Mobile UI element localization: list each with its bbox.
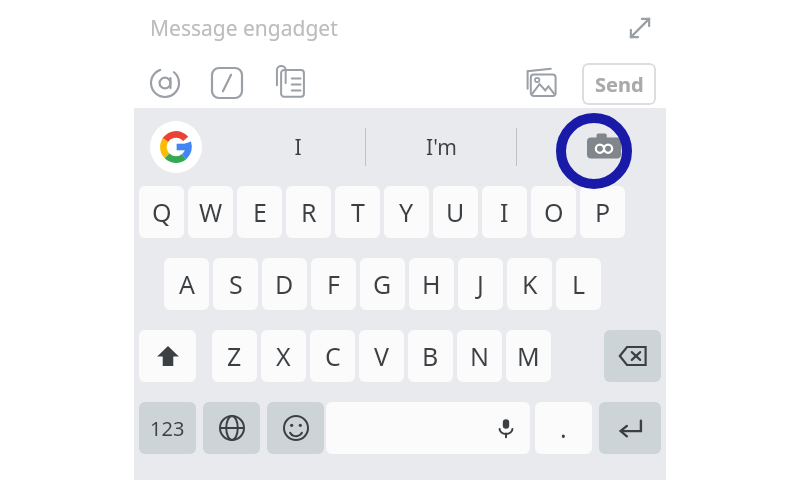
- staticText: K: [522, 267, 538, 301]
- staticText: U: [446, 195, 465, 229]
- staticText: W: [199, 195, 223, 229]
- button[interactable]: Space: [326, 402, 530, 454]
- button[interactable]: Backspace: [604, 330, 661, 382]
- button[interactable]: O: [531, 186, 576, 238]
- button[interactable]: D: [262, 258, 307, 310]
- button[interactable]: V: [359, 330, 404, 382]
- button[interactable]: Y: [384, 186, 429, 238]
- staticText: D: [275, 267, 294, 301]
- button[interactable]: Add image: [522, 64, 562, 104]
- staticText: Send: [595, 71, 644, 98]
- button[interactable]: A: [164, 258, 209, 310]
- staticText: J: [477, 267, 484, 301]
- staticText: P: [595, 195, 611, 229]
- button[interactable]: Attach file: [272, 64, 310, 102]
- button[interactable]: M: [506, 330, 551, 382]
- button[interactable]: Emoji: [267, 402, 324, 454]
- button[interactable]: Slash command: [210, 66, 244, 100]
- button[interactable]: 123: [139, 402, 196, 454]
- staticText: H: [422, 267, 441, 301]
- staticText: C: [325, 339, 341, 373]
- button[interactable]: W: [188, 186, 233, 238]
- staticText: S: [229, 267, 243, 301]
- button[interactable]: I'm: [366, 108, 516, 186]
- button[interactable]: Q: [139, 186, 184, 238]
- button[interactable]: H: [409, 258, 454, 310]
- button[interactable]: P: [580, 186, 625, 238]
- staticText: Z: [227, 339, 242, 373]
- staticText: B: [422, 339, 439, 373]
- button[interactable]: F: [311, 258, 356, 310]
- staticText: I'm: [426, 133, 457, 162]
- button[interactable]: I: [230, 108, 365, 186]
- staticText: O: [544, 195, 564, 229]
- button[interactable]: U: [433, 186, 478, 238]
- staticText: X: [276, 339, 291, 373]
- button[interactable]: S: [213, 258, 258, 310]
- staticText: .: [560, 411, 567, 445]
- button[interactable]: T: [335, 186, 380, 238]
- button[interactable]: Google: [150, 121, 202, 173]
- staticText: 123: [150, 415, 185, 442]
- button[interactable]: I: [482, 186, 527, 238]
- staticText: E: [253, 195, 267, 229]
- button[interactable]: Google Lens: [544, 108, 664, 186]
- staticText: N: [470, 339, 490, 373]
- staticText: Y: [399, 195, 414, 229]
- button[interactable]: Expand: [620, 8, 660, 48]
- button[interactable]: J: [458, 258, 503, 310]
- button[interactable]: Shift: [139, 330, 196, 382]
- button[interactable]: R: [286, 186, 331, 238]
- button[interactable]: C: [310, 330, 355, 382]
- button[interactable]: N: [457, 330, 502, 382]
- button[interactable]: .: [535, 402, 592, 454]
- button[interactable]: Enter: [599, 402, 661, 454]
- staticText: R: [301, 195, 317, 229]
- button[interactable]: L: [556, 258, 601, 310]
- staticText: Message engadget: [150, 14, 338, 43]
- staticText: I: [500, 195, 509, 229]
- button[interactable]: X: [261, 330, 306, 382]
- staticText: G: [373, 267, 392, 301]
- button[interactable]: Z: [212, 330, 257, 382]
- button[interactable]: Mention: [146, 64, 184, 102]
- button[interactable]: E: [237, 186, 282, 238]
- staticText: Q: [152, 195, 172, 229]
- other: Highlight: [556, 113, 632, 189]
- staticText: V: [374, 339, 390, 373]
- staticText: I: [294, 133, 302, 162]
- button[interactable]: K: [507, 258, 552, 310]
- button[interactable]: Change language: [203, 402, 260, 454]
- button[interactable]: B: [408, 330, 453, 382]
- staticText: A: [179, 267, 195, 301]
- staticText: T: [351, 195, 365, 229]
- button[interactable]: Send: [582, 63, 656, 105]
- button[interactable]: G: [360, 258, 405, 310]
- staticText: M: [517, 339, 540, 373]
- staticText: F: [327, 267, 340, 301]
- staticText: L: [572, 267, 586, 301]
